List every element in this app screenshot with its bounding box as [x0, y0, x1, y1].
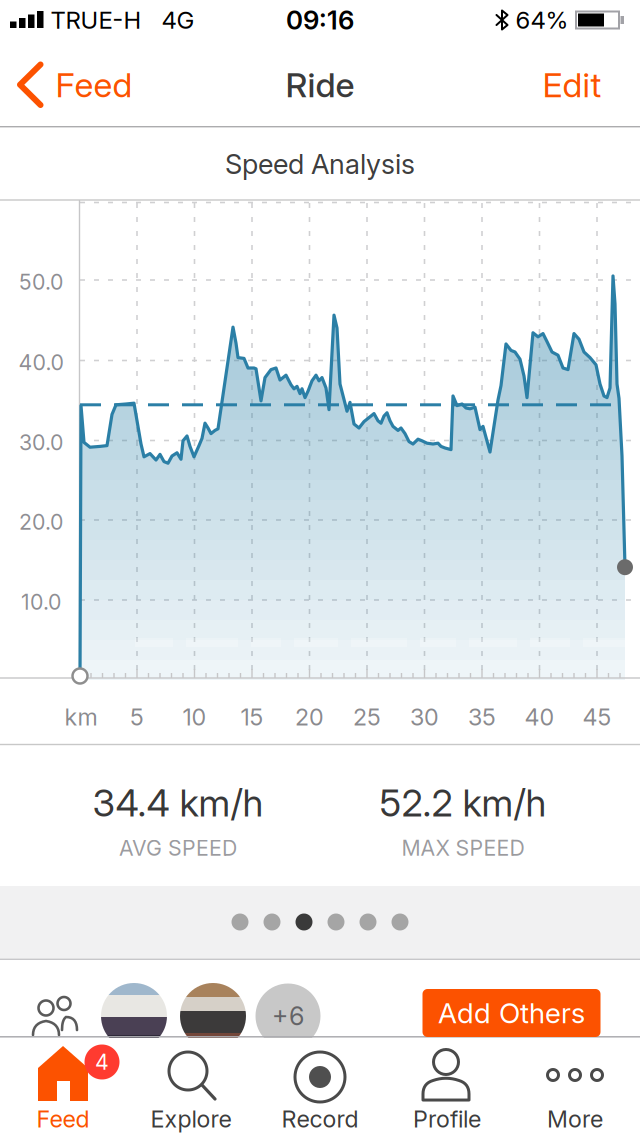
staticText: 15: [240, 703, 263, 731]
staticText: km: [64, 703, 97, 731]
staticText: Feed: [36, 1105, 89, 1133]
staticText: Ride: [285, 64, 354, 105]
staticText: 45: [582, 703, 611, 731]
staticText: 52.2 km/h: [379, 780, 546, 826]
staticText: MAX SPEED: [401, 835, 524, 861]
button[interactable]: More: [512, 1037, 640, 1136]
staticText: More: [547, 1105, 603, 1133]
staticText: 30.0: [19, 430, 63, 455]
staticText: 4G: [161, 5, 194, 34]
button[interactable]: Edit: [522, 50, 622, 120]
button[interactable]: Back to Feed: [0, 50, 135, 120]
staticText: Feed: [55, 64, 132, 105]
button[interactable]: 4: [0, 1037, 128, 1136]
staticText: 09:16: [286, 4, 354, 36]
staticText: 10: [182, 703, 206, 731]
staticText: Add Others: [438, 996, 585, 1030]
button[interactable]: Explore: [128, 1037, 256, 1136]
staticText: Record: [281, 1105, 358, 1133]
staticText: Edit: [542, 64, 601, 105]
staticText: 5: [130, 703, 144, 731]
staticText: Explore: [150, 1105, 231, 1133]
staticText: 35: [468, 703, 496, 731]
staticText: 40.0: [18, 350, 63, 375]
button[interactable]: Profile: [384, 1037, 512, 1136]
staticText: 64%: [515, 5, 568, 34]
button[interactable]: Athletes: [101, 983, 321, 1049]
staticText: 20.0: [19, 509, 63, 535]
staticText: 25: [353, 703, 381, 731]
staticText: 4: [95, 1049, 109, 1075]
button[interactable]: Record: [256, 1037, 384, 1136]
staticText: Speed Analysis: [225, 147, 415, 181]
staticText: AVG SPEED: [119, 835, 237, 861]
staticText: 50.0: [19, 269, 63, 295]
staticText: +6: [272, 1001, 304, 1031]
staticText: Profile: [413, 1105, 481, 1133]
button[interactable]: Add Others: [422, 989, 600, 1037]
staticText: TRUE-H: [50, 5, 141, 34]
staticText: 10.0: [21, 589, 61, 615]
staticText: 30: [410, 703, 439, 731]
staticText: 20: [295, 703, 324, 731]
staticText: 40: [524, 703, 554, 731]
staticText: 34.4 km/h: [92, 780, 263, 826]
